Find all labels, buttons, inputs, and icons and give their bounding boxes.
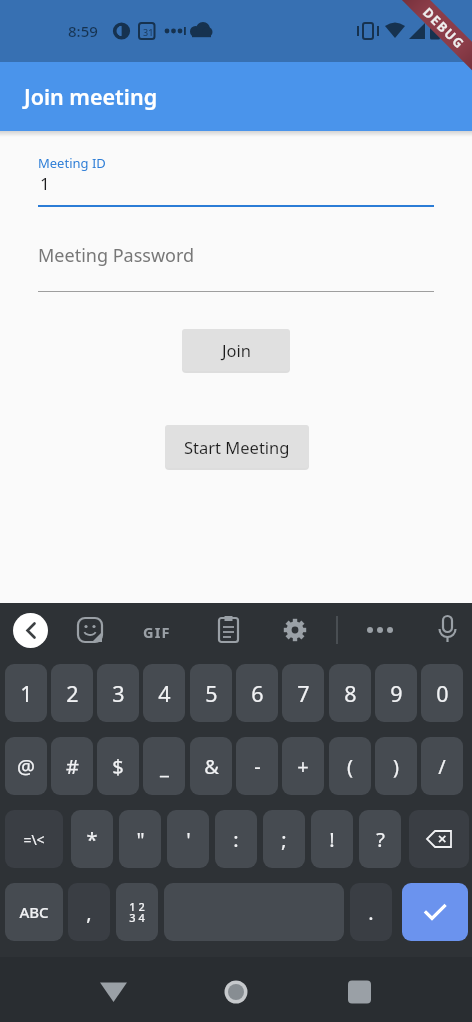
button[interactable]: 8 [329,664,371,722]
staticText: ? [376,826,385,853]
button[interactable] [13,613,48,648]
button[interactable]: 9 [375,664,417,722]
staticText: ) [393,753,399,780]
button[interactable] [362,612,398,648]
staticText: $ [112,753,124,780]
button[interactable] [139,612,175,648]
staticText: Meeting Password [38,243,195,268]
staticText: 8 [344,679,357,708]
button[interactable]: " [119,810,161,868]
button[interactable]: 0 [421,664,463,722]
staticText: : [233,826,239,853]
staticText: 8:59 [68,21,98,41]
button[interactable] [402,883,468,941]
button[interactable]: =\< [5,810,63,868]
button[interactable]: 7 [282,664,324,722]
button[interactable]: * [71,810,113,868]
button[interactable]: - [236,737,278,795]
button[interactable] [429,612,465,648]
staticText: 6 [251,679,264,708]
button[interactable]: 1 2 3 4 [116,883,158,941]
button[interactable]: ( [329,737,371,795]
button[interactable]: 4 [143,664,185,722]
button[interactable] [212,968,260,1016]
button[interactable] [409,810,469,868]
staticText: 3 [112,679,125,708]
button[interactable]: : [215,810,257,868]
button[interactable] [210,612,246,648]
staticText: 9 [390,679,403,708]
button[interactable]: 1 [5,664,47,722]
button[interactable]: Join [182,329,290,371]
staticText: ! [329,826,335,853]
staticText: " [136,826,145,853]
button[interactable] [38,145,434,207]
button[interactable]: # [51,737,93,795]
button[interactable]: + [282,737,324,795]
button[interactable]: , [68,883,110,941]
staticText: ( [347,753,353,780]
button[interactable]: & [190,737,232,795]
staticText: GIF [143,622,171,642]
button[interactable] [89,968,137,1016]
button[interactable]: 5 [190,664,232,722]
staticText: - [254,753,261,780]
staticText: 1 2 3 4 [129,899,145,926]
staticText: 0 [436,679,449,708]
button[interactable]: Start Meeting [165,425,309,468]
button[interactable] [72,612,108,648]
staticText: & [204,753,219,780]
staticText: =\< [23,830,45,849]
staticText: Join meeting [24,82,158,111]
button[interactable]: @ [5,737,47,795]
staticText: * [86,826,98,853]
button[interactable]: 6 [236,664,278,722]
button[interactable] [277,612,313,648]
staticText: . [368,899,374,926]
staticText: Join [222,339,251,361]
button[interactable]: ' [167,810,209,868]
staticText: 2 [66,679,79,708]
button[interactable]: ! [311,810,353,868]
button[interactable] [335,968,383,1016]
button[interactable]: 3 [97,664,139,722]
button[interactable]: ? [359,810,401,868]
button[interactable]: $ [97,737,139,795]
staticText: Meeting ID [38,154,106,172]
staticText: 31 [143,26,154,38]
staticText: ' [186,826,191,853]
staticText: ; [281,826,287,853]
button[interactable]: _ [143,737,185,795]
button[interactable]: 2 [51,664,93,722]
staticText: 1 [40,172,50,195]
button[interactable] [38,232,434,292]
button[interactable]: ; [263,810,305,868]
button[interactable]: . [350,883,392,941]
staticText: @ [17,753,35,780]
staticText: , [86,899,92,926]
staticText: DEBUG [419,3,469,53]
button[interactable]: ABC [5,883,63,941]
button[interactable]: ) [375,737,417,795]
staticText: / [438,753,446,780]
staticText: 5 [205,679,218,708]
staticText: # [66,753,79,780]
staticText: 1 [20,679,33,708]
staticText: + [297,753,309,780]
staticText: ABC [19,902,49,922]
button[interactable]: / [421,737,463,795]
staticText: 4 [158,679,171,708]
staticText: _ [160,753,169,780]
staticText: Start Meeting [184,436,290,458]
staticText: 7 [297,679,310,708]
